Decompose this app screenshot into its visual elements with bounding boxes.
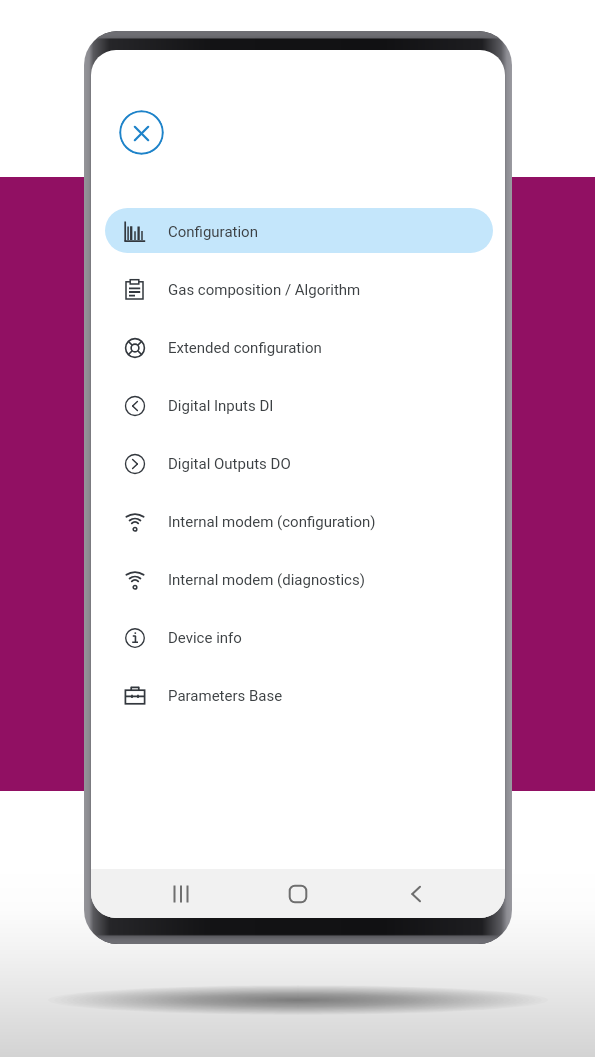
staticText: Parameters Base: [168, 687, 283, 705]
staticText: Digital Inputs DI: [168, 397, 274, 415]
button[interactable]: Device info: [105, 614, 493, 659]
button[interactable]: Home: [270, 869, 326, 918]
button[interactable]: Gas composition / Algorithm: [105, 266, 493, 311]
button[interactable]: Internal modem (diagnostics): [105, 556, 493, 601]
button[interactable]: Digital Inputs DI: [105, 382, 493, 427]
staticText: Internal modem (diagnostics): [168, 571, 365, 589]
button[interactable]: Digital Outputs DO: [105, 440, 493, 485]
staticText: Extended configuration: [168, 339, 322, 357]
staticText: Gas composition / Algorithm: [168, 281, 361, 299]
staticText: Internal modem (configuration): [168, 513, 376, 531]
button[interactable]: Parameters Base: [105, 672, 493, 717]
button[interactable]: Internal modem (configuration): [105, 498, 493, 543]
staticText: Configuration: [168, 223, 258, 241]
button[interactable]: Recents: [153, 869, 209, 918]
button[interactable]: Configuration: [105, 208, 493, 253]
staticText: Device info: [168, 629, 242, 647]
button[interactable]: Close: [119, 110, 164, 155]
button[interactable]: Back: [388, 869, 444, 918]
staticText: Digital Outputs DO: [168, 455, 291, 473]
button[interactable]: Extended configuration: [105, 324, 493, 369]
